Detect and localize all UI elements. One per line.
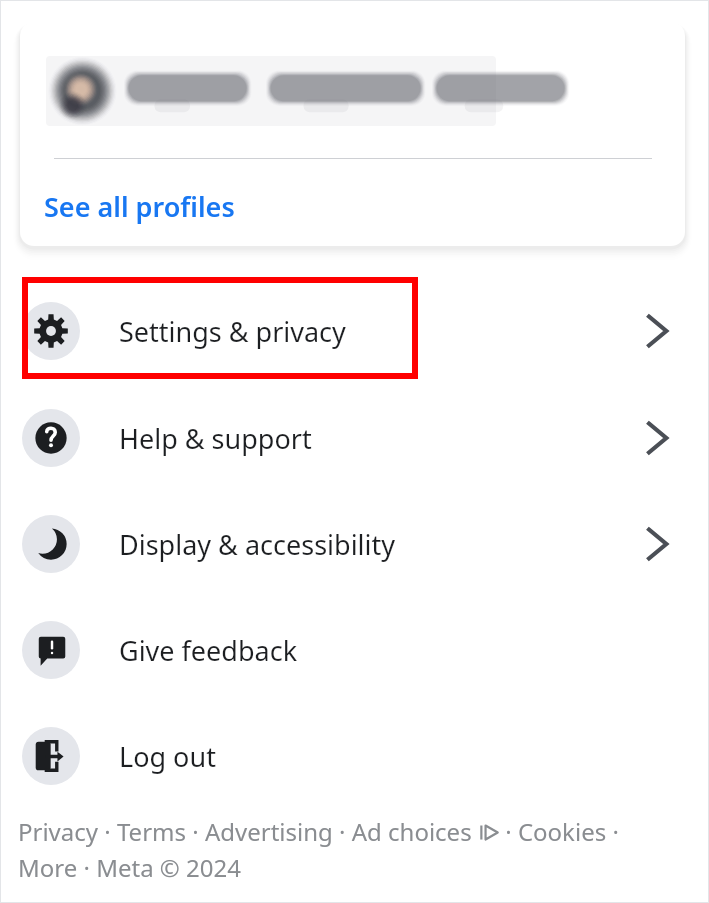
staticText: · Cookies · <box>499 815 619 848</box>
staticText: Settings & privacy <box>119 313 346 350</box>
button[interactable]: See all profiles <box>44 182 284 230</box>
staticText: Give feedback <box>119 632 298 669</box>
button[interactable]: Profile <box>46 56 496 126</box>
staticText: See all profiles <box>44 188 235 225</box>
staticText: Log out <box>119 738 216 775</box>
button[interactable]: Log out <box>0 717 709 795</box>
button[interactable]: Help & support <box>0 399 709 477</box>
staticText: Display & accessibility <box>119 526 396 563</box>
staticText: Help & support <box>119 420 312 457</box>
button[interactable]: Give feedback <box>0 611 709 689</box>
staticText: More · Meta © 2024 <box>18 851 241 884</box>
button[interactable]: Display & accessibility <box>0 505 709 583</box>
button[interactable]: Settings & privacy <box>0 292 709 370</box>
staticText: Privacy · Terms · Advertising · Ad choic… <box>18 815 478 848</box>
